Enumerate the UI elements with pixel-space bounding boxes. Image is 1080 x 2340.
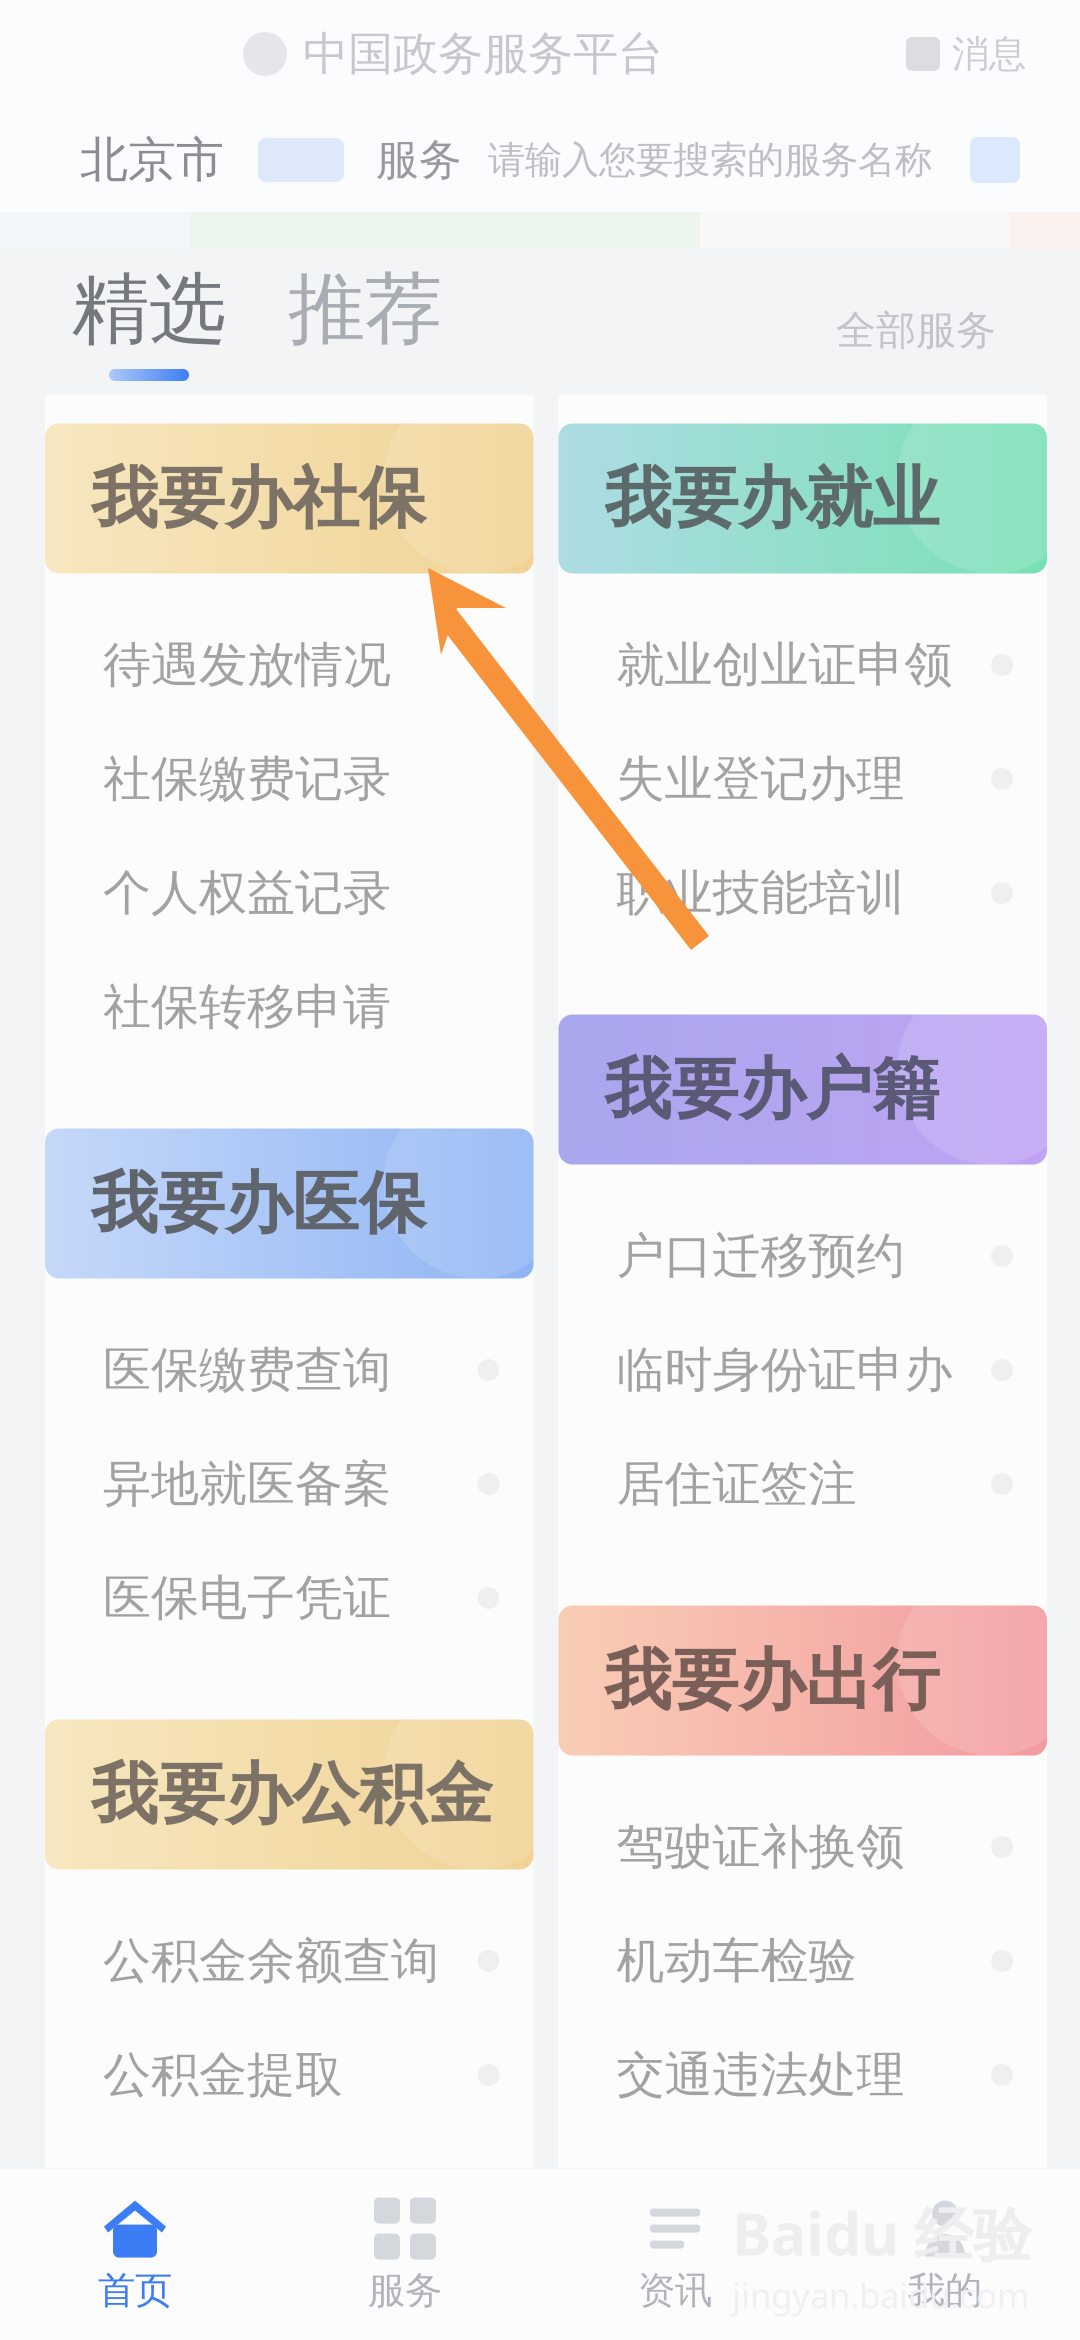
staticText: 我的 bbox=[908, 2268, 982, 2313]
button[interactable]: 医保缴费查询 bbox=[45, 1313, 533, 1427]
staticText: 失业登记办理 bbox=[616, 749, 904, 808]
button[interactable]: 我要办就业 bbox=[558, 427, 1047, 570]
staticText: 异地就医备案 bbox=[103, 1454, 391, 1513]
button[interactable]: 消息 bbox=[906, 31, 1026, 77]
staticText: 机动车检验 bbox=[616, 1931, 856, 1990]
button[interactable]: 医保电子凭证 bbox=[45, 1541, 533, 1655]
button[interactable]: 我要办医保 bbox=[45, 1132, 533, 1275]
button[interactable]: 全部服务 bbox=[836, 306, 996, 355]
button[interactable]: 异地就医备案 bbox=[45, 1427, 533, 1541]
button[interactable]: 首页 bbox=[0, 2169, 270, 2340]
staticText: 个人权益记录 bbox=[103, 863, 391, 922]
staticText: 驾驶证补换领 bbox=[616, 1817, 904, 1876]
button[interactable]: 交通违法处理 bbox=[558, 2018, 1047, 2132]
staticText: 首页 bbox=[98, 2268, 172, 2313]
staticText: 服务 bbox=[368, 2268, 442, 2313]
button[interactable]: 北京市 bbox=[80, 130, 224, 189]
button[interactable]: 职业技能培训 bbox=[558, 836, 1047, 950]
staticText: 医保缴费查询 bbox=[103, 1340, 391, 1399]
button[interactable]: 机动车检验 bbox=[558, 1904, 1047, 2018]
staticText: 社保缴费记录 bbox=[103, 749, 391, 808]
button[interactable]: 我要办社保 bbox=[45, 427, 533, 570]
button[interactable]: 精选 bbox=[72, 262, 226, 381]
button[interactable]: 户口迁移预约 bbox=[558, 1199, 1047, 1313]
staticText: 服务 bbox=[376, 134, 462, 186]
staticText: Baidu 经验 bbox=[732, 2194, 1032, 2272]
button[interactable]: 我要办户籍 bbox=[558, 1018, 1047, 1161]
button[interactable]: 个人权益记录 bbox=[45, 836, 533, 950]
staticText: 我要办公积金 bbox=[91, 1754, 493, 1835]
staticText: 推荐 bbox=[288, 262, 442, 357]
button[interactable]: 社保缴费记录 bbox=[45, 722, 533, 836]
staticText: 交通违法处理 bbox=[616, 2045, 904, 2104]
staticText: 职业技能培训 bbox=[616, 863, 904, 922]
staticText: 社保转移申请 bbox=[103, 977, 391, 1036]
button[interactable]: 公积金余额查询 bbox=[45, 1904, 533, 2018]
staticText: 我要办就业 bbox=[604, 458, 939, 539]
staticText: 我要办社保 bbox=[91, 458, 426, 539]
staticText: 医保电子凭证 bbox=[103, 1568, 391, 1627]
button[interactable]: 居住证签注 bbox=[558, 1427, 1047, 1541]
staticText: jingyan.baidu.com bbox=[732, 2272, 1029, 2318]
staticText: 公积金余额查询 bbox=[103, 1931, 439, 1990]
staticText: 我要办医保 bbox=[91, 1163, 426, 1244]
button[interactable]: 我要办公积金 bbox=[45, 1723, 533, 1866]
staticText: 户口迁移预约 bbox=[616, 1226, 904, 1285]
button[interactable]: 驾驶证补换领 bbox=[558, 1790, 1047, 1904]
button[interactable]: 失业登记办理 bbox=[558, 722, 1047, 836]
button[interactable]: 我要办出行 bbox=[558, 1609, 1047, 1752]
button[interactable]: 就业创业证申领 bbox=[558, 608, 1047, 722]
staticText: 就业创业证申领 bbox=[616, 635, 952, 694]
staticText: 居住证签注 bbox=[616, 1454, 856, 1513]
button[interactable]: 社保转移申请 bbox=[45, 950, 533, 1064]
staticText: 待遇发放情况 bbox=[103, 635, 391, 694]
staticText: 全部服务 bbox=[836, 306, 996, 355]
button[interactable]: 资讯 bbox=[540, 2169, 810, 2340]
staticText: 公积金提取 bbox=[103, 2045, 343, 2104]
button[interactable]: 服务 bbox=[224, 108, 1020, 212]
button[interactable]: 待遇发放情况 bbox=[45, 608, 533, 722]
staticText: 我要办户籍 bbox=[604, 1049, 939, 1130]
button[interactable]: 临时身份证申办 bbox=[558, 1313, 1047, 1427]
button[interactable]: 我的 bbox=[810, 2169, 1080, 2340]
staticText: 精选 bbox=[72, 262, 226, 357]
staticText: 中国政务服务平台 bbox=[303, 26, 663, 82]
staticText: 临时身份证申办 bbox=[616, 1340, 952, 1399]
staticText: 我要办出行 bbox=[604, 1640, 939, 1721]
button[interactable]: 公积金提取 bbox=[45, 2018, 533, 2132]
staticText: 消息 bbox=[952, 31, 1026, 77]
staticText: 请输入您要搜索的服务名称 bbox=[488, 137, 932, 183]
button[interactable]: 推荐 bbox=[288, 262, 442, 357]
staticText: 资讯 bbox=[638, 2268, 712, 2313]
staticText: 北京市 bbox=[80, 130, 224, 189]
button[interactable]: 服务 bbox=[270, 2169, 540, 2340]
